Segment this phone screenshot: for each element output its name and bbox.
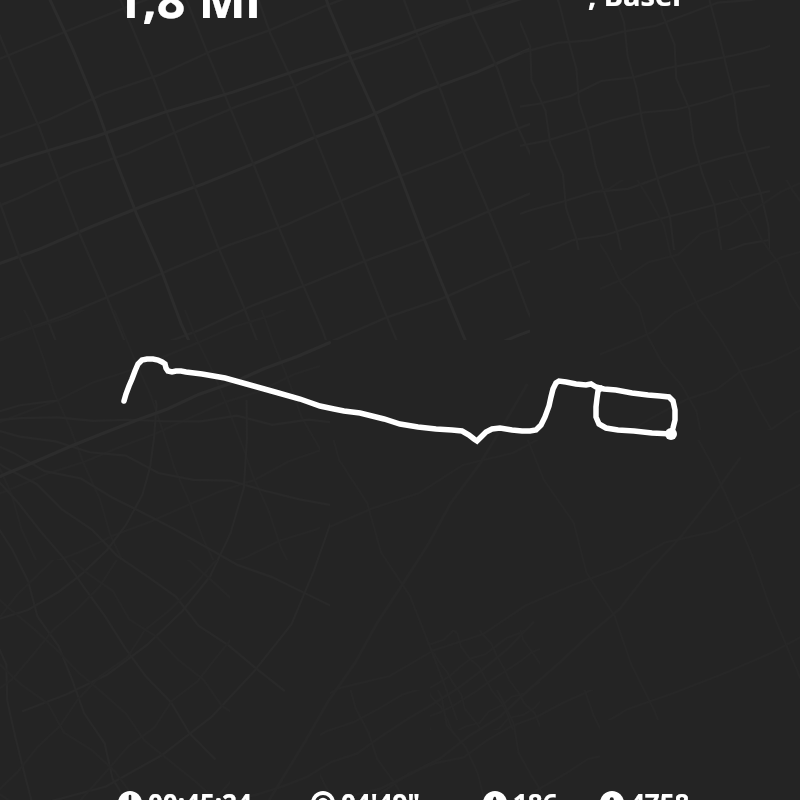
button[interactable]: 00:45:24 [118, 791, 252, 800]
other: 00:45:24 [118, 791, 142, 800]
other: 04'49" [311, 791, 335, 800]
button[interactable]: 4758 [600, 791, 690, 800]
staticText: , Basel [588, 0, 681, 14]
button[interactable]: 186 [483, 791, 558, 800]
staticText: 04'49" [341, 785, 420, 800]
staticText: 4758 [630, 785, 690, 800]
staticText: 00:45:24 [148, 785, 252, 800]
other: 186 [483, 791, 507, 800]
button[interactable]: 1,8 Mi [114, 0, 261, 33]
button[interactable]: 04'49" [311, 791, 420, 800]
other: 4758 [600, 791, 624, 800]
button[interactable]: , Basel [588, 0, 681, 14]
staticText: 186 [513, 785, 558, 800]
staticText: 1,8 Mi [114, 0, 261, 33]
